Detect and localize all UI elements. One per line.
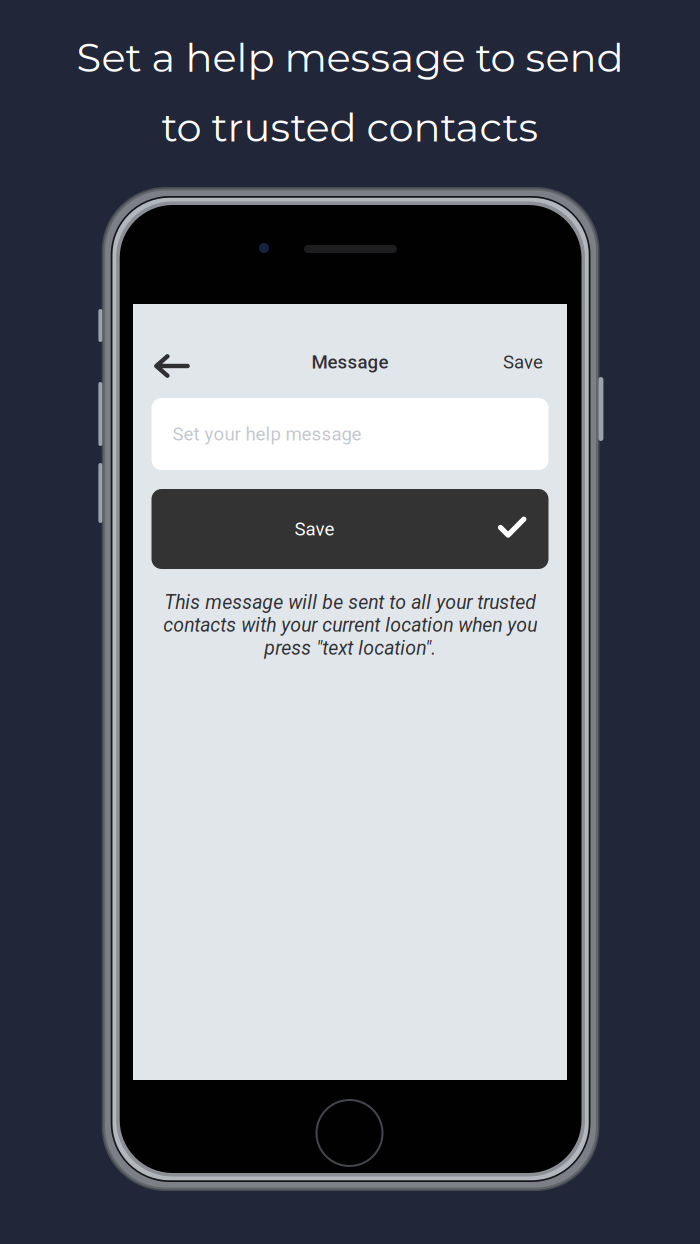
staticText: Message <box>311 351 388 373</box>
button[interactable]: Back <box>143 335 201 389</box>
staticText: Save <box>503 351 543 373</box>
staticText: Save <box>294 518 334 540</box>
staticText: This message will be sent to all your tr… <box>163 591 537 659</box>
button[interactable]: Set your help message <box>151 398 548 470</box>
button[interactable]: Save <box>151 489 548 569</box>
staticText: Set a help message to send <box>76 33 623 82</box>
button[interactable]: Save <box>495 335 551 389</box>
staticText: to trusted contacts <box>161 103 538 152</box>
staticText: Set your help message <box>172 423 361 445</box>
